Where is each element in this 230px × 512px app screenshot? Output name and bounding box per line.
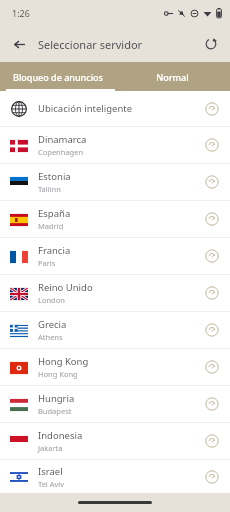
button[interactable]: Hong Kong [0,349,230,385]
button[interactable]: Ping Estonia [199,169,225,195]
button[interactable]: España [0,201,230,237]
button[interactable]: Reino Unido [0,275,230,311]
staticText: Tel Aviv [38,479,65,489]
staticText: Dinamarca [38,133,87,146]
staticText: Hungria [38,392,75,405]
staticText: Madrid [38,221,64,231]
staticText: Seleccionar servidor [38,37,143,52]
staticText: Hong Kong [38,355,89,368]
staticText: Tallinn [38,184,61,194]
button[interactable]: Normal [115,62,230,91]
button[interactable]: Ping Hungria [199,391,225,417]
staticText: Copenhagen [38,147,84,157]
button[interactable]: Ping Reino Unido [199,280,225,306]
staticText: 1:26 [12,7,30,19]
button[interactable]: Francia [0,238,230,274]
staticText: Indonesia [38,429,83,442]
staticText: Budapest [38,406,72,416]
staticText: Paris [38,258,56,268]
button[interactable]: Ping Israel [199,464,225,490]
staticText: Athens [38,332,63,342]
button[interactable]: Ping Grecia [199,317,225,343]
button[interactable]: Ping Francia [199,243,225,269]
staticText: Estonia [38,170,71,183]
button[interactable]: Ping Hong Kong [199,354,225,380]
button[interactable]: Back [6,31,32,57]
button[interactable]: Grecia [0,312,230,348]
button[interactable]: Ubicación inteligente [0,91,230,126]
staticText: Hong Kong [38,369,78,379]
staticText: Jakarta [38,443,63,453]
button[interactable]: Ping España [199,206,225,232]
staticText: Francia [38,244,71,257]
staticText: Israel [38,465,63,478]
button[interactable]: Ping Dinamarca [199,132,225,158]
button[interactable]: Indonesia [0,423,230,459]
staticText: Grecia [38,318,67,331]
button[interactable]: Ping Indonesia [199,428,225,454]
staticText: Ubicación inteligente [38,102,133,115]
button[interactable]: Estonia [0,164,230,200]
button[interactable]: Israel [0,460,230,493]
staticText: Bloqueo de anuncios [13,71,103,83]
staticText: España [38,207,71,220]
staticText: Normal [156,71,189,83]
button[interactable]: Ping Ubicación inteligente [199,96,225,122]
staticText: London [38,295,65,305]
staticText: Reino Unido [38,281,93,294]
button[interactable]: Hungria [0,386,230,422]
button[interactable]: Refresh [198,31,224,57]
button[interactable]: Dinamarca [0,127,230,163]
button[interactable]: Bloqueo de anuncios [0,62,115,91]
